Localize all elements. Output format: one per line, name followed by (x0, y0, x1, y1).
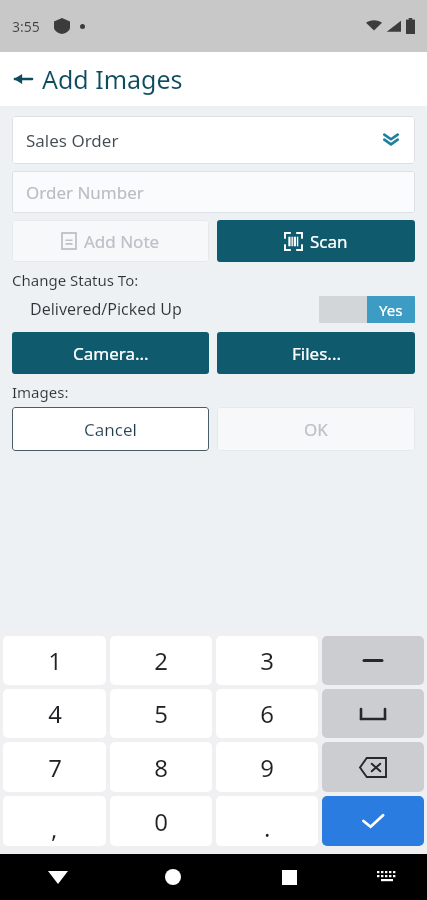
button[interactable]: Scan (217, 220, 415, 262)
button[interactable]: 8 (110, 742, 212, 792)
button[interactable]: . (216, 796, 318, 846)
staticText: Order Number (26, 181, 144, 204)
staticText: 1 (48, 644, 62, 677)
staticText: Camera... (73, 342, 149, 365)
button[interactable]: Recents (231, 854, 347, 900)
button[interactable]: 0 (110, 796, 212, 846)
button[interactable]: 6 (216, 689, 318, 738)
button[interactable]: Space (322, 689, 424, 738)
staticText: 5 (154, 697, 168, 730)
staticText: Yes (379, 300, 403, 320)
button[interactable]: , (3, 796, 106, 846)
button[interactable]: Sales Order (12, 116, 415, 164)
button[interactable]: Camera... (12, 332, 209, 374)
button[interactable]: Cancel (12, 407, 209, 451)
staticText: 4 (48, 697, 62, 730)
staticText: Add Images (42, 62, 183, 96)
button[interactable]: 4 (3, 689, 106, 738)
staticText: Images: (12, 382, 69, 402)
staticText: Cancel (84, 418, 137, 441)
staticText: Add Note (84, 230, 160, 253)
button[interactable]: Yes (319, 296, 415, 323)
button[interactable]: 2 (110, 636, 212, 685)
staticText: Scan (310, 230, 348, 253)
staticText: Files... (292, 342, 341, 365)
staticText: 3:55 (12, 17, 40, 36)
staticText: Change Status To: (12, 270, 139, 290)
staticText: 0 (154, 805, 168, 838)
staticText: 6 (260, 697, 274, 730)
staticText: 2 (154, 644, 168, 677)
button[interactable]: Home (115, 854, 231, 900)
button[interactable]: Order Number (12, 171, 415, 213)
staticText: 8 (154, 751, 168, 784)
staticText: , (51, 812, 58, 845)
button[interactable]: 3 (216, 636, 318, 685)
button[interactable]: Add Note (12, 220, 209, 262)
staticText: Delivered/Picked Up (30, 298, 182, 320)
button[interactable]: 5 (110, 689, 212, 738)
staticText: Sales Order (26, 129, 119, 152)
button[interactable]: Minus (322, 636, 424, 685)
button[interactable]: Backspace (322, 742, 424, 792)
button[interactable]: Keyboard (347, 854, 427, 900)
button[interactable]: 9 (216, 742, 318, 792)
button[interactable]: 7 (3, 742, 106, 792)
button[interactable]: Back (0, 854, 115, 900)
button[interactable]: OK (217, 407, 415, 451)
staticText: 3 (260, 644, 274, 677)
button[interactable]: Back (10, 66, 36, 92)
staticText: . (264, 811, 271, 844)
staticText: 9 (260, 751, 274, 784)
staticText: OK (304, 418, 328, 441)
button[interactable]: Enter (322, 796, 424, 846)
staticText: 7 (48, 751, 62, 784)
button[interactable]: Files... (217, 332, 415, 374)
button[interactable]: 1 (3, 636, 106, 685)
